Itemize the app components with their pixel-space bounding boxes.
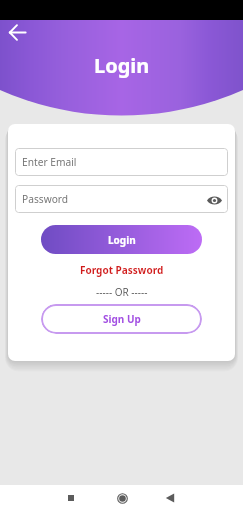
- button[interactable]: Back: [158, 486, 182, 510]
- button[interactable]: Forgot Password: [80, 263, 164, 277]
- button[interactable]: Enter Email: [15, 148, 228, 176]
- button[interactable]: Show password: [204, 190, 224, 210]
- staticText: Login: [108, 233, 136, 247]
- staticText: Login: [94, 52, 150, 79]
- button[interactable]: Home: [110, 486, 134, 510]
- staticText: Enter Email: [22, 155, 77, 169]
- button[interactable]: Back: [4, 19, 30, 45]
- button[interactable]: Password: [15, 185, 228, 213]
- button[interactable]: Sign Up: [41, 304, 202, 334]
- staticText: Sign Up: [103, 312, 141, 326]
- staticText: Password: [22, 192, 69, 206]
- button[interactable]: Login: [41, 225, 202, 254]
- button[interactable]: Recent apps: [59, 486, 83, 510]
- staticText: Forgot Password: [80, 263, 164, 277]
- staticText: ----- OR -----: [96, 285, 148, 299]
